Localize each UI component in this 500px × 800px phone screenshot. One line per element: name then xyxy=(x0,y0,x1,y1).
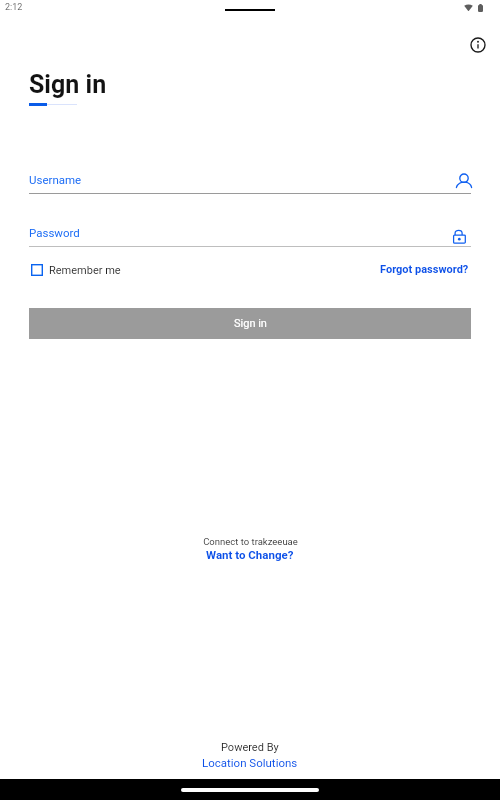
button[interactable]: Username xyxy=(452,169,476,193)
button[interactable]: Show password xyxy=(448,224,472,248)
staticText: Connect to trakzeeuae xyxy=(203,536,298,547)
staticText: Want to Change? xyxy=(206,548,294,561)
button[interactable]: Want to Change? xyxy=(204,548,296,561)
staticText: Username xyxy=(29,173,82,186)
staticText: 2:12 xyxy=(5,2,23,13)
button[interactable]: Remember me xyxy=(31,262,121,278)
button[interactable]: Information xyxy=(463,30,493,60)
button[interactable]: Sign in xyxy=(29,308,471,339)
staticText: Remember me xyxy=(49,264,121,277)
staticText: Powered By xyxy=(221,741,279,754)
staticText: Sign in xyxy=(29,70,107,99)
button[interactable]: Location Solutions xyxy=(200,756,300,769)
staticText: Location Solutions xyxy=(202,756,298,769)
staticText: Sign in xyxy=(234,317,267,330)
staticText: Password xyxy=(29,226,80,239)
staticText: Forgot password? xyxy=(380,263,469,276)
button[interactable]: Forgot password? xyxy=(376,260,473,279)
